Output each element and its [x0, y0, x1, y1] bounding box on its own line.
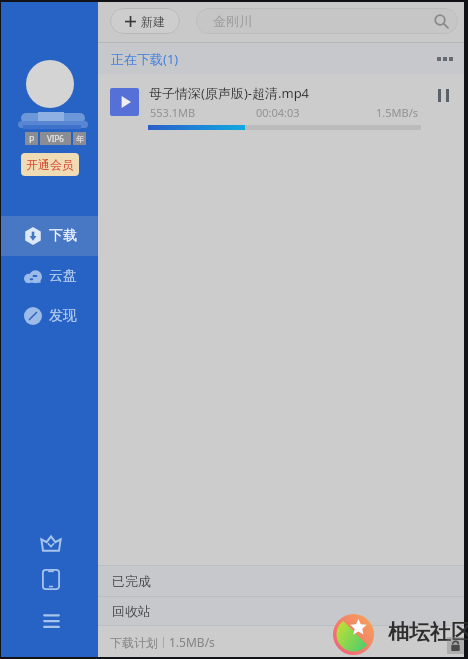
staticText: P	[29, 133, 35, 145]
staticText: 1.5MB/s	[376, 105, 419, 120]
staticText: 金刚川	[213, 13, 252, 29]
staticText: 柚坛社区	[388, 619, 468, 645]
button[interactable]: 云盘	[1, 256, 98, 296]
button[interactable]: 开通会员	[21, 153, 79, 176]
button[interactable]: 母子情深(原声版)-超清.mp4	[98, 74, 464, 139]
other: Search	[434, 14, 449, 29]
staticText: 下载	[49, 227, 77, 245]
staticText: 回收站	[112, 603, 151, 619]
staticText: 发现	[49, 307, 77, 325]
button[interactable]: 发现	[1, 296, 98, 336]
staticText: 母子情深(原声版)-超清.mp4	[149, 84, 310, 102]
staticText: 下载计划	[110, 635, 158, 650]
staticText: 553.1MB	[150, 105, 196, 120]
staticText: 年	[76, 134, 84, 144]
button[interactable]: 金刚川	[196, 8, 458, 34]
button[interactable]: VIP membership	[31, 524, 71, 564]
button[interactable]: Avatar	[26, 60, 74, 108]
button[interactable]: Menu	[31, 600, 71, 640]
button[interactable]: More options	[437, 57, 453, 61]
button[interactable]: Pause	[432, 84, 454, 106]
staticText: 开通会员	[26, 157, 74, 172]
button[interactable]: 回收站	[98, 597, 464, 625]
staticText: 00:04:03	[256, 105, 300, 120]
staticText: 已完成	[112, 573, 151, 589]
button[interactable]: 新建	[110, 8, 180, 34]
staticText: 新建	[141, 14, 165, 29]
staticText: 1.5MB/s	[169, 634, 215, 650]
button[interactable]: Mobile app	[31, 559, 71, 599]
staticText: VIP6	[47, 133, 64, 144]
staticText: 云盘	[49, 267, 77, 285]
staticText: 正在下载(1)	[111, 50, 179, 68]
button[interactable]: 已完成	[98, 566, 464, 596]
button[interactable]: 下载	[1, 216, 98, 256]
